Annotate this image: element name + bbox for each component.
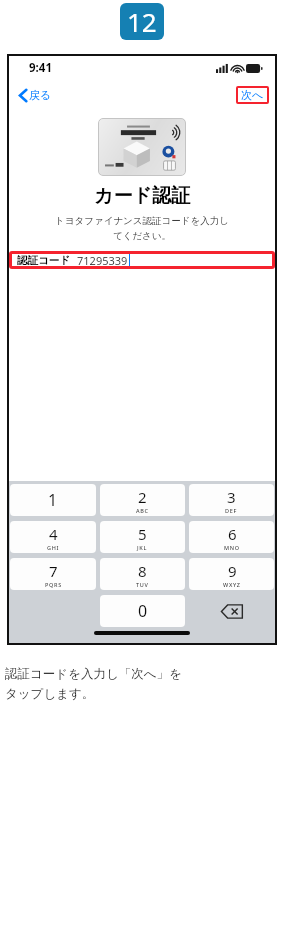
staticText: PQRS [45,581,62,588]
button[interactable]: 1 [10,484,96,516]
button[interactable]: 2 [100,484,185,516]
staticText: 6 [228,524,237,544]
button[interactable]: 戻る [17,86,54,104]
staticText: 認証コード [17,254,70,267]
staticText: 次へ [241,88,264,102]
staticText: 9 [228,561,237,581]
staticText: 0 [138,600,148,622]
staticText: 4 [49,524,58,544]
staticText: JKL [137,544,148,551]
staticText: TUV [136,581,149,588]
button[interactable]: 5 [100,521,185,553]
staticText: 5 [138,524,147,544]
button[interactable]: 7 [10,558,96,590]
button[interactable]: 4 [10,521,96,553]
staticText: 71295339 [77,253,128,268]
button[interactable]: 次へ [236,86,269,104]
staticText: GHI [47,544,60,551]
staticText: MNO [224,544,240,551]
staticText: カード認証 [94,184,190,208]
staticText: 7 [49,561,58,581]
button[interactable]: 0 [100,595,185,627]
staticText: 2 [138,487,147,507]
staticText: 1 [48,489,58,511]
button[interactable]: 認証コード [9,251,275,269]
staticText: 12 [127,4,157,39]
staticText: トヨタファイナンス認証コードを入力し てください。 [21,215,263,242]
staticText: 9:41 [29,60,52,76]
staticText: ABC [136,507,149,514]
staticText: 戻る [29,88,52,102]
staticText: DEF [225,507,238,514]
staticText: 8 [138,561,147,581]
staticText: 3 [227,487,236,507]
button[interactable]: Backspace [189,595,274,627]
button[interactable]: 9 [189,558,274,590]
staticText: WXYZ [223,581,241,588]
button[interactable]: 3 [189,484,274,516]
button[interactable]: 8 [100,558,185,590]
button[interactable]: 6 [189,521,274,553]
staticText: 認証コードを入力し「次へ」を タップします。 [5,666,277,702]
